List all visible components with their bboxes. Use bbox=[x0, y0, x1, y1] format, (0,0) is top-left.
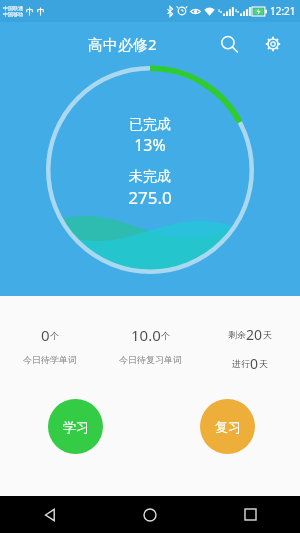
staticText: 天 bbox=[259, 358, 268, 369]
button[interactable]: Back bbox=[0, 496, 100, 533]
staticText: 今日待复习单词 bbox=[119, 354, 182, 365]
button[interactable]: 0 bbox=[0, 325, 100, 365]
staticText: 剩余 bbox=[228, 329, 246, 340]
staticText: 12:21 bbox=[270, 4, 296, 18]
button[interactable]: 10.0 bbox=[100, 325, 200, 365]
staticText: ³ᴳ bbox=[218, 9, 223, 16]
button[interactable]: 高中必修2 bbox=[82, 30, 163, 58]
button[interactable]: Settings bbox=[258, 29, 288, 59]
staticText: 中国联通 bbox=[3, 5, 23, 11]
staticText: 天 bbox=[263, 329, 272, 340]
staticText: 13% bbox=[134, 134, 166, 156]
staticText: 复习 bbox=[215, 419, 241, 435]
button[interactable]: 复习 bbox=[200, 399, 255, 454]
staticText: 进行 bbox=[232, 358, 250, 369]
staticText: 个 bbox=[161, 330, 170, 341]
staticText: 学习 bbox=[63, 419, 89, 435]
staticText: 个 bbox=[50, 330, 59, 341]
staticText: 0 bbox=[41, 325, 50, 345]
staticText: 高中必修2 bbox=[88, 34, 157, 54]
staticText: 10.0 bbox=[131, 325, 161, 345]
staticText: 0 bbox=[250, 354, 259, 373]
button[interactable]: 学习 bbox=[48, 399, 103, 454]
staticText: 275.0 bbox=[128, 186, 172, 209]
button[interactable]: 剩余 bbox=[200, 325, 300, 373]
staticText: 未完成 bbox=[129, 168, 171, 186]
staticText: 中国移动 bbox=[3, 11, 23, 17]
staticText: 已完成 bbox=[129, 116, 171, 134]
button[interactable]: Search bbox=[214, 29, 244, 59]
button[interactable]: Recent apps bbox=[200, 496, 300, 533]
staticText: 20 bbox=[246, 325, 263, 344]
staticText: ³ᴳ bbox=[235, 9, 240, 16]
button[interactable]: Home bbox=[100, 496, 200, 533]
staticText: 今日待学单词 bbox=[23, 354, 77, 365]
